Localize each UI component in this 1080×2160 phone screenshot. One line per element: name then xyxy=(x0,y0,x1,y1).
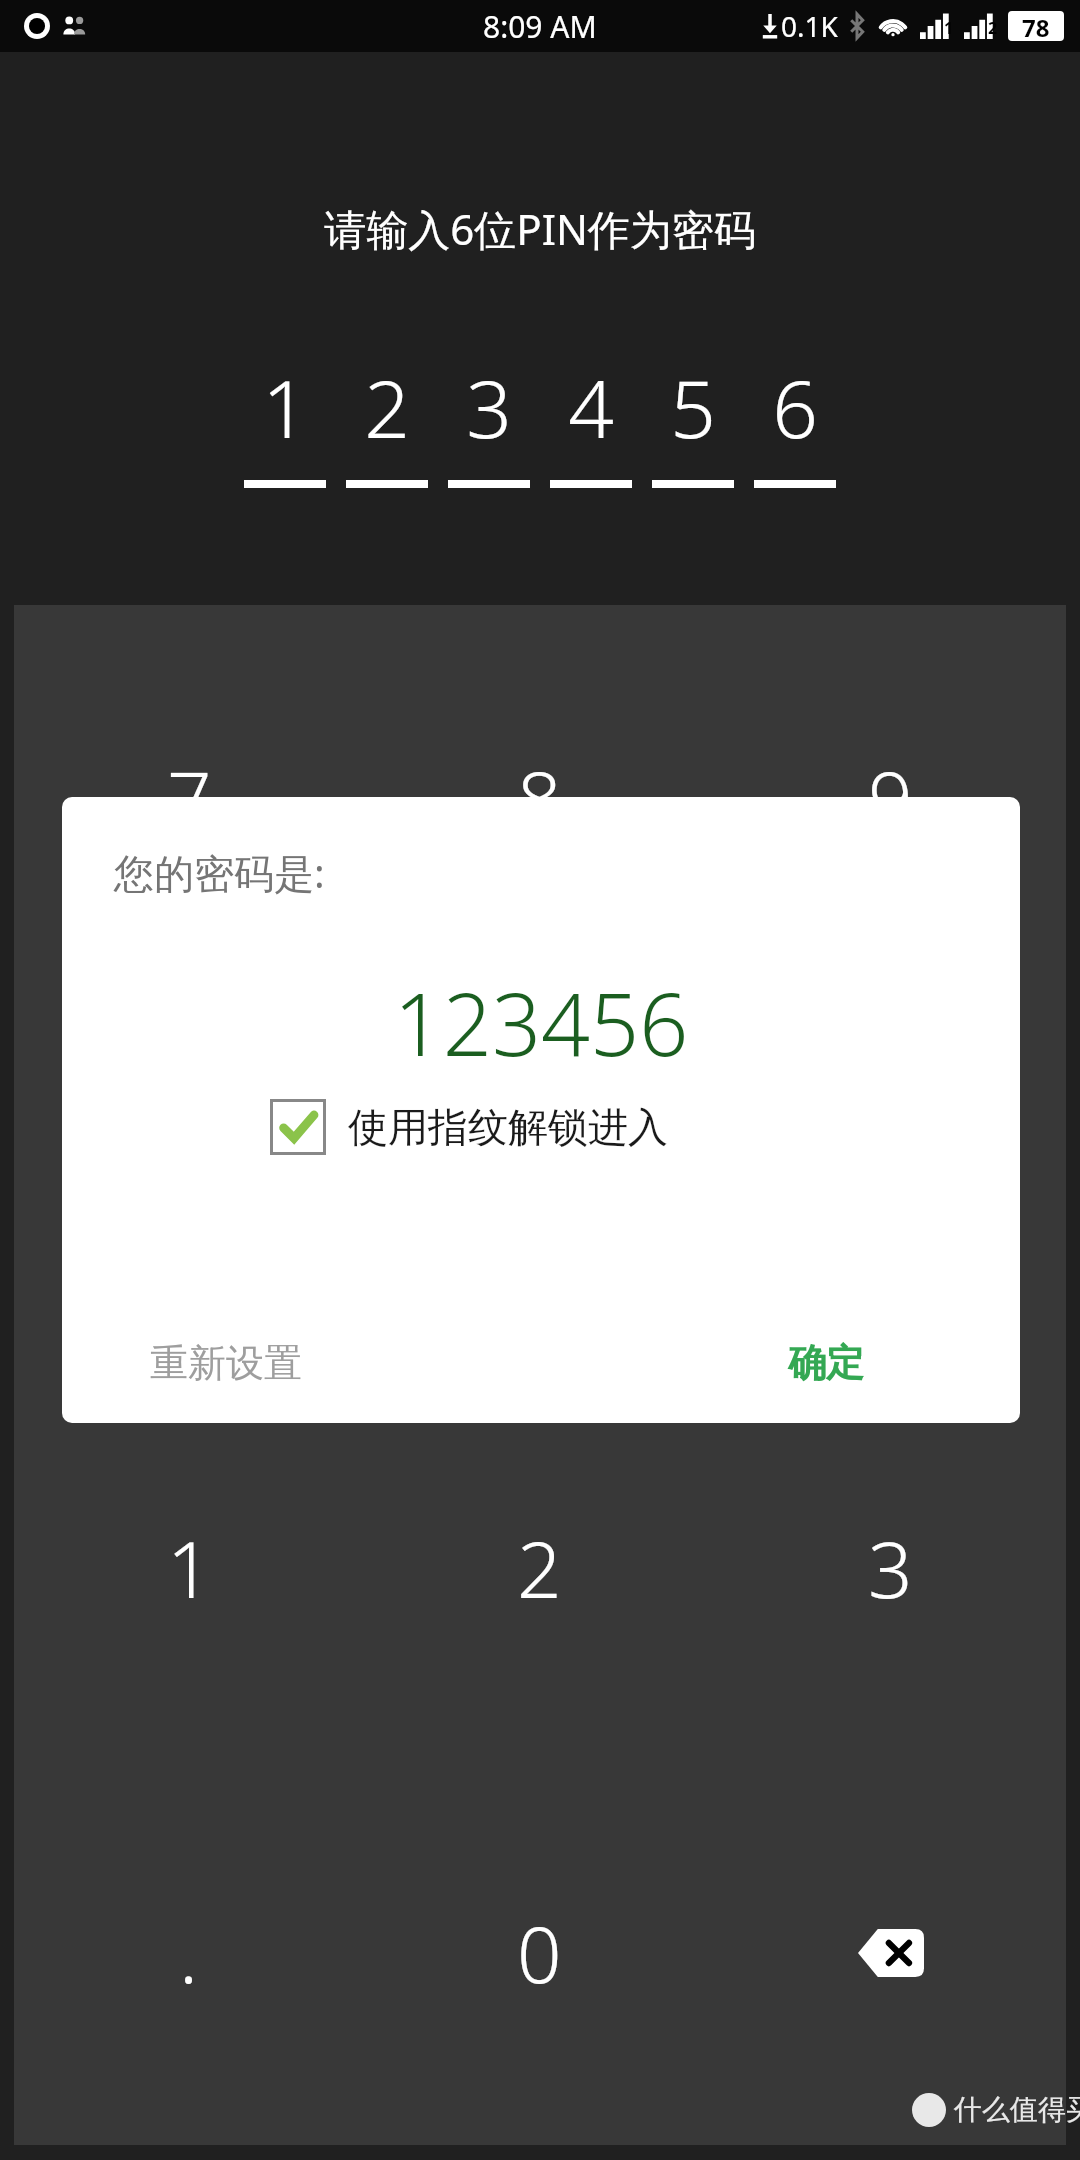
staticText: 3 xyxy=(466,352,512,461)
staticText: 确定 xyxy=(788,1339,864,1387)
staticText: 7 xyxy=(167,745,212,851)
staticText: 0.1K xyxy=(781,7,838,45)
staticText: . xyxy=(179,1900,199,2006)
button[interactable]: 8 xyxy=(364,605,715,990)
staticText: 5 xyxy=(517,1130,562,1236)
button[interactable]: 0 xyxy=(364,1760,715,2145)
button[interactable]: 9 xyxy=(715,605,1066,990)
staticText: 使用指纹解锁进入 xyxy=(348,1102,668,1152)
staticText: 您的密码是: xyxy=(114,845,325,900)
button[interactable]: 7 xyxy=(14,605,364,990)
button[interactable]: 5 xyxy=(364,990,715,1375)
button[interactable]: 确定 xyxy=(780,1327,872,1399)
staticText: 2 xyxy=(364,352,410,461)
staticText: 重新设置 xyxy=(150,1339,302,1387)
staticText: 2 xyxy=(988,17,998,39)
staticText: 6 xyxy=(772,352,818,461)
staticText: 8:09 AM xyxy=(483,6,597,47)
staticText: 1 xyxy=(944,17,954,39)
button[interactable]: 4 xyxy=(14,990,364,1375)
staticText: 78 xyxy=(1022,11,1050,41)
staticText: 5 xyxy=(670,352,716,461)
button[interactable]: 2 xyxy=(364,1375,715,1760)
staticText: 0 xyxy=(517,1900,562,2006)
staticText: 8 xyxy=(517,745,562,851)
button[interactable]: Backspace xyxy=(715,1760,1066,2145)
staticText: 123456 xyxy=(62,964,1020,1081)
button[interactable]: 重新设置 xyxy=(142,1327,310,1399)
staticText: 什么值得买 xyxy=(954,2092,1080,2127)
button[interactable]: 6 xyxy=(715,990,1066,1375)
staticText: 2 xyxy=(517,1515,562,1621)
button[interactable]: 使用指纹解锁进入 xyxy=(270,1099,1020,1155)
staticText: 3 xyxy=(868,1515,913,1621)
staticText: 9 xyxy=(868,745,913,851)
button[interactable]: . xyxy=(14,1760,364,2145)
staticText: 4 xyxy=(568,352,614,461)
button[interactable]: 1 xyxy=(14,1375,364,1760)
staticText: 1 xyxy=(167,1515,212,1621)
button[interactable]: 3 xyxy=(715,1375,1066,1760)
staticText: 请输入6位PIN作为密码 xyxy=(0,200,1080,257)
staticText: 1 xyxy=(262,352,308,461)
